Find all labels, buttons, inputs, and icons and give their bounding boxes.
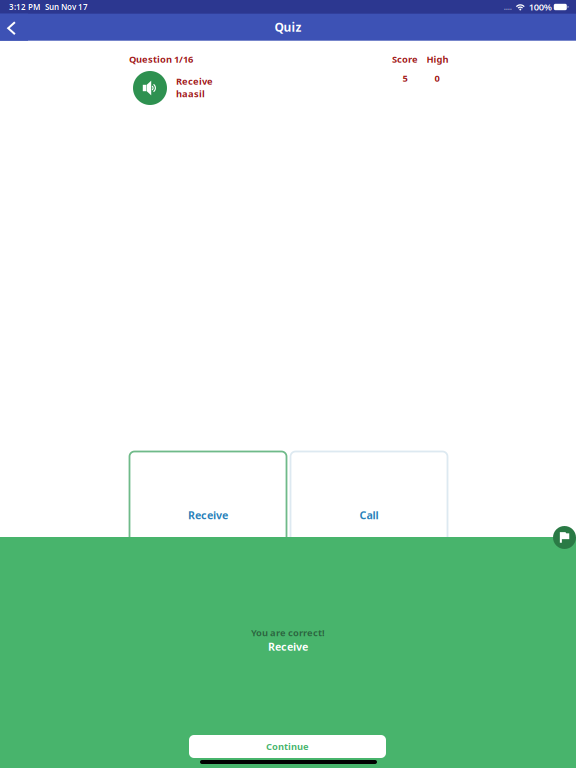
staticText: Score bbox=[392, 53, 418, 65]
staticText: Sun Nov 17 bbox=[45, 2, 88, 12]
button[interactable]: Back bbox=[0, 14, 28, 41]
staticText: haasil bbox=[176, 87, 205, 100]
staticText: You are correct! bbox=[251, 626, 325, 639]
button[interactable]: Receive bbox=[129, 451, 286, 579]
staticText: Receive bbox=[188, 508, 228, 522]
button[interactable]: Play audio bbox=[133, 71, 167, 105]
staticText: Continue bbox=[266, 740, 309, 753]
staticText: 5 bbox=[402, 72, 407, 84]
staticText: .... bbox=[504, 2, 512, 12]
staticText: Receive bbox=[268, 639, 308, 654]
staticText: Call bbox=[359, 508, 378, 522]
staticText: High bbox=[426, 53, 448, 65]
staticText: 100% bbox=[529, 1, 552, 13]
staticText: 0 bbox=[434, 72, 439, 84]
button[interactable]: Continue bbox=[189, 735, 386, 758]
staticText: Receive bbox=[176, 75, 213, 87]
staticText: Question 1/16 bbox=[129, 53, 193, 65]
button[interactable]: Call bbox=[290, 451, 447, 579]
staticText: Quiz bbox=[274, 19, 301, 35]
staticText: 3:12 PM bbox=[9, 2, 40, 12]
button[interactable]: Report a problem bbox=[553, 526, 576, 549]
